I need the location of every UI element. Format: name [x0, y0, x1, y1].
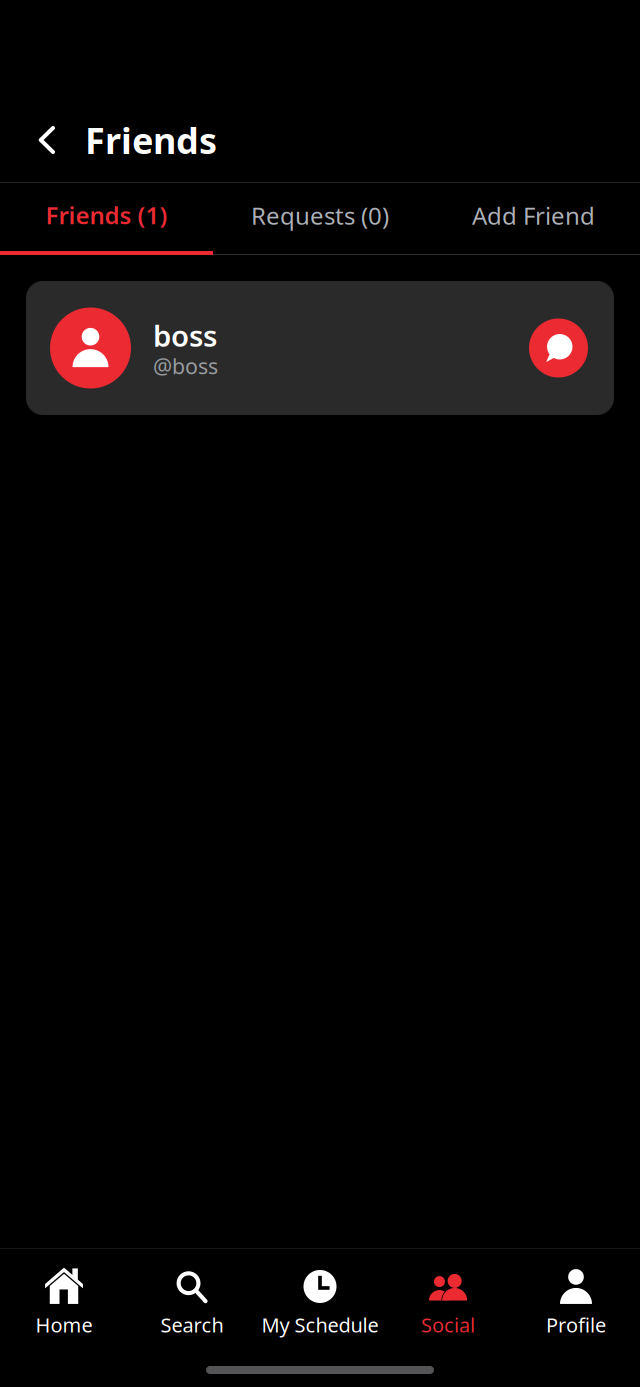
button[interactable]: boss	[26, 281, 614, 415]
button[interactable]: Social	[384, 1249, 512, 1342]
staticText: Friends (1)	[45, 199, 167, 231]
staticText: Social	[421, 1311, 475, 1338]
staticText: Requests (0)	[251, 200, 389, 231]
staticText: My Schedule	[261, 1311, 378, 1338]
staticText: Search	[160, 1311, 223, 1338]
staticText: Profile	[546, 1311, 606, 1338]
staticText: Friends	[85, 116, 217, 164]
button[interactable]: Friends (1)	[0, 183, 213, 255]
button[interactable]: Requests (0)	[213, 183, 427, 255]
button[interactable]: My Schedule	[256, 1249, 384, 1342]
button[interactable]: Profile	[512, 1249, 640, 1342]
button[interactable]: Add Friend	[427, 183, 640, 255]
staticText: Add Friend	[472, 200, 595, 231]
button[interactable]: Message boss	[529, 318, 588, 377]
button[interactable]: Search	[128, 1249, 256, 1342]
button[interactable]: Back	[24, 113, 70, 167]
staticText: Home	[35, 1311, 92, 1338]
button[interactable]: Home	[0, 1249, 128, 1342]
staticText: @boss	[153, 352, 218, 380]
staticText: boss	[153, 316, 217, 355]
